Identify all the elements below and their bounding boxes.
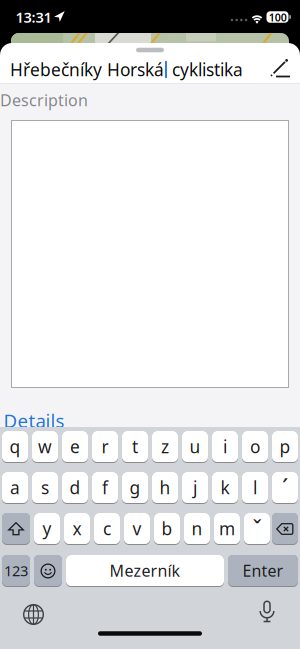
staticText: v — [132, 517, 141, 540]
staticText: y — [42, 517, 51, 540]
button[interactable]: Delete — [272, 513, 298, 545]
button[interactable]: o — [242, 431, 268, 463]
staticText: Description — [0, 89, 88, 111]
staticText: m — [219, 517, 235, 540]
button[interactable]: Description — [11, 120, 289, 388]
staticText: k — [220, 476, 229, 499]
button[interactable]: j — [182, 472, 208, 504]
button[interactable]: a — [2, 472, 28, 504]
button[interactable]: r — [92, 431, 118, 463]
staticText: Hřebečníky Horská — [10, 58, 164, 81]
button[interactable]: w — [32, 431, 58, 463]
button[interactable]: i — [212, 431, 238, 463]
button[interactable]: h — [152, 472, 178, 504]
staticText: u — [189, 435, 200, 458]
button[interactable]: b — [154, 513, 180, 545]
button[interactable]: u — [182, 431, 208, 463]
staticText: j — [193, 476, 197, 499]
staticText: q — [9, 435, 20, 458]
staticText: s — [41, 476, 49, 499]
button[interactable]: l — [242, 472, 268, 504]
staticText: cyklistika — [167, 58, 243, 81]
button[interactable]: p — [272, 431, 298, 463]
staticText: l — [253, 476, 257, 499]
staticText: x — [72, 517, 81, 540]
staticText: d — [69, 476, 80, 499]
staticText: g — [129, 476, 140, 499]
staticText: 100 — [269, 10, 287, 24]
button[interactable]: e — [62, 431, 88, 463]
staticText: e — [70, 435, 80, 458]
staticText: n — [191, 517, 202, 540]
button[interactable]: Mezerník — [66, 555, 224, 587]
staticText: 13:31 — [15, 7, 51, 27]
staticText: Details — [3, 408, 64, 433]
staticText: r — [101, 435, 108, 458]
button[interactable]: Next keyboard — [22, 603, 45, 626]
staticText: ´ — [282, 472, 288, 502]
button[interactable]: n — [184, 513, 210, 545]
staticText: Enter — [242, 560, 283, 581]
staticText: t — [132, 435, 138, 458]
button[interactable]: Dictation — [258, 599, 276, 624]
button[interactable]: Details — [3, 408, 64, 433]
button[interactable]: 123 — [2, 555, 30, 587]
button[interactable]: Enter — [228, 555, 298, 587]
button[interactable]: Emoji — [34, 555, 62, 587]
staticText: a — [10, 476, 20, 499]
staticText: b — [161, 517, 172, 540]
button[interactable]: Shift — [2, 513, 30, 545]
staticText: h — [159, 476, 170, 499]
button[interactable]: z — [152, 431, 178, 463]
button[interactable]: Title — [0, 49, 258, 89]
button[interactable]: ˇ — [244, 513, 270, 545]
staticText: Mezerník — [109, 560, 180, 581]
button[interactable]: q — [2, 431, 28, 463]
button[interactable]: m — [214, 513, 240, 545]
staticText: w — [38, 435, 52, 458]
staticText: o — [250, 435, 260, 458]
staticText: i — [223, 435, 227, 458]
button[interactable]: s — [32, 472, 58, 504]
button[interactable]: ´ — [272, 472, 298, 504]
button[interactable]: k — [212, 472, 238, 504]
button[interactable]: t — [122, 431, 148, 463]
staticText: z — [161, 435, 169, 458]
button[interactable]: d — [62, 472, 88, 504]
staticText: f — [102, 476, 108, 499]
staticText: c — [103, 517, 111, 540]
staticText: ˇ — [252, 513, 261, 543]
button[interactable]: y — [34, 513, 60, 545]
button[interactable]: f — [92, 472, 118, 504]
button[interactable]: g — [122, 472, 148, 504]
staticText: 123 — [4, 561, 28, 580]
button[interactable]: v — [124, 513, 150, 545]
button[interactable]: c — [94, 513, 120, 545]
staticText: p — [279, 435, 290, 458]
button[interactable]: x — [64, 513, 90, 545]
button[interactable]: Edit — [267, 57, 293, 83]
